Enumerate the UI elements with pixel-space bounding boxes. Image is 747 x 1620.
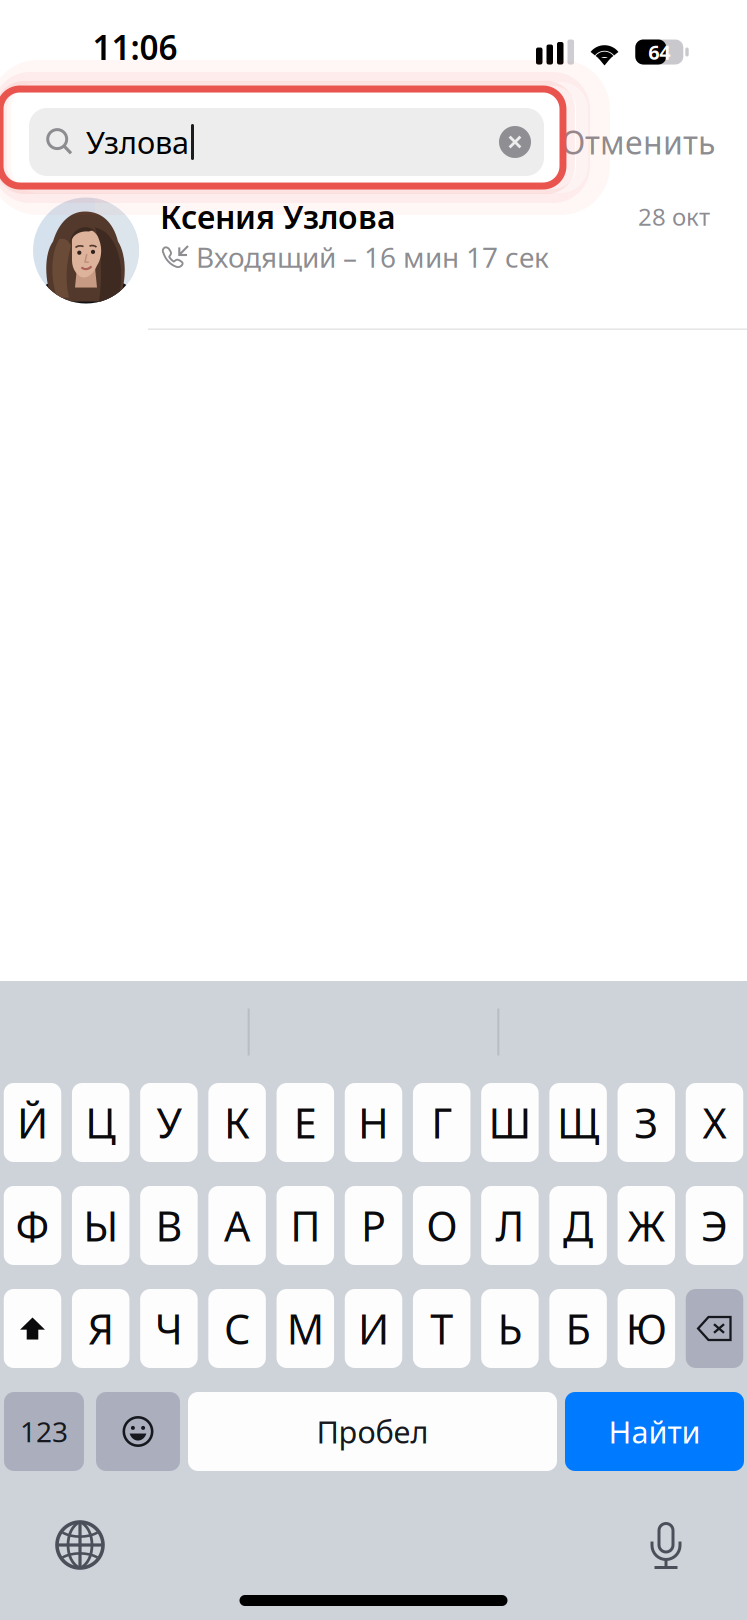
button[interactable]: Ю: [618, 1289, 675, 1368]
staticText: Ф: [15, 1198, 49, 1253]
staticText: Входящий – 16 мин 17 сек: [196, 238, 549, 276]
button[interactable]: Б: [549, 1289, 607, 1368]
button[interactable]: Ксения Узлова: [0, 192, 747, 344]
button[interactable]: Ш: [481, 1083, 539, 1162]
button[interactable]: Узлова: [29, 108, 544, 176]
button[interactable]: З: [618, 1083, 675, 1162]
staticText: Ы: [83, 1198, 118, 1253]
button[interactable]: М: [277, 1289, 334, 1368]
staticText: Х: [702, 1095, 726, 1150]
staticText: Б: [566, 1301, 591, 1356]
staticText: О: [426, 1198, 457, 1253]
button[interactable]: Найти: [565, 1392, 744, 1471]
staticText: М: [287, 1301, 324, 1356]
staticText: Щ: [557, 1095, 599, 1150]
staticText: Р: [361, 1198, 386, 1253]
button[interactable]: Т: [413, 1289, 470, 1368]
staticText: П: [290, 1198, 320, 1253]
staticText: И: [358, 1301, 389, 1356]
button[interactable]: Н: [345, 1083, 402, 1162]
button[interactable]: Щ: [549, 1083, 607, 1162]
button[interactable]: Delete: [686, 1289, 743, 1368]
button[interactable]: Х: [686, 1083, 743, 1162]
button[interactable]: П: [277, 1186, 334, 1265]
staticText: К: [224, 1095, 250, 1150]
staticText: В: [155, 1198, 182, 1253]
button[interactable]: Ц: [72, 1083, 129, 1162]
staticText: А: [224, 1198, 250, 1253]
button[interactable]: В: [140, 1186, 198, 1265]
button[interactable]: О: [413, 1186, 470, 1265]
button[interactable]: Л: [481, 1186, 539, 1265]
button[interactable]: С: [208, 1289, 266, 1368]
staticText: Э: [701, 1198, 728, 1253]
staticText: 11:06: [92, 25, 177, 69]
button[interactable]: Я: [72, 1289, 129, 1368]
button[interactable]: Ф: [4, 1186, 61, 1265]
button[interactable]: Ы: [72, 1186, 129, 1265]
staticText: Н: [358, 1095, 389, 1150]
button[interactable]: У: [140, 1083, 198, 1162]
staticText: Ж: [628, 1198, 665, 1253]
button[interactable]: Ж: [618, 1186, 675, 1265]
button[interactable]: Ч: [140, 1289, 198, 1368]
button[interactable]: Ь: [481, 1289, 539, 1368]
staticText: Я: [88, 1301, 114, 1356]
button[interactable]: Д: [549, 1186, 607, 1265]
button[interactable]: К: [208, 1083, 266, 1162]
staticText: Ш: [488, 1095, 531, 1150]
staticText: Отменить: [561, 121, 715, 163]
staticText: Пробел: [316, 1411, 428, 1452]
button[interactable]: И: [345, 1289, 402, 1368]
staticText: Т: [430, 1301, 453, 1356]
staticText: Ч: [155, 1301, 183, 1356]
button[interactable]: Shift: [4, 1289, 61, 1368]
button[interactable]: Р: [345, 1186, 402, 1265]
button[interactable]: Switch keyboard: [55, 1520, 105, 1570]
staticText: Ь: [497, 1301, 522, 1356]
staticText: Узлова: [86, 122, 189, 162]
staticText: 123: [20, 1413, 68, 1450]
button[interactable]: 123: [4, 1392, 84, 1471]
button[interactable]: Emoji: [96, 1392, 180, 1471]
staticText: З: [634, 1095, 658, 1150]
button[interactable]: Э: [686, 1186, 743, 1265]
staticText: Ю: [626, 1301, 667, 1356]
staticText: Л: [495, 1198, 524, 1253]
staticText: Й: [17, 1095, 48, 1150]
staticText: Г: [431, 1095, 452, 1150]
staticText: Найти: [608, 1411, 700, 1452]
button[interactable]: Г: [413, 1083, 470, 1162]
button[interactable]: Отменить: [561, 108, 716, 176]
staticText: Ц: [85, 1095, 116, 1150]
staticText: Ксения Узлова: [160, 195, 396, 238]
staticText: Е: [294, 1095, 317, 1150]
button[interactable]: Е: [277, 1083, 334, 1162]
button[interactable]: Пробел: [188, 1392, 557, 1471]
staticText: У: [156, 1095, 181, 1150]
button[interactable]: А: [208, 1186, 266, 1265]
button[interactable]: Dictate: [648, 1518, 684, 1572]
staticText: 28 окт: [638, 200, 710, 232]
button[interactable]: Й: [4, 1083, 61, 1162]
staticText: 64: [648, 39, 670, 65]
staticText: С: [224, 1301, 250, 1356]
staticText: Д: [563, 1198, 593, 1253]
